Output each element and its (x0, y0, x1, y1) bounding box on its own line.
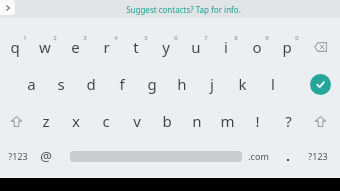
button[interactable]: b (152, 103, 182, 139)
staticText: 5 (144, 34, 148, 42)
staticText: j (210, 74, 214, 94)
button[interactable]: o (242, 29, 272, 65)
staticText: t (133, 37, 139, 57)
button[interactable]: f (107, 66, 137, 102)
button[interactable]: q (0, 29, 30, 65)
button[interactable]: Expand suggestions (0, 0, 15, 15)
staticText: q (10, 37, 20, 57)
staticText: g (147, 74, 157, 94)
staticText: e (71, 37, 80, 57)
button[interactable]: Backspace (305, 29, 335, 65)
button[interactable]: Shift (1, 103, 31, 139)
staticText: z (42, 111, 50, 131)
staticText: y (162, 37, 170, 57)
button[interactable]: s (46, 66, 76, 102)
button[interactable]: i (211, 29, 241, 65)
staticText: m (220, 111, 235, 131)
staticText: h (177, 74, 187, 94)
button[interactable]: j (197, 66, 227, 102)
staticText: v (133, 111, 141, 131)
staticText: 1 (23, 34, 27, 42)
staticText: p (282, 37, 292, 57)
staticText: ! (255, 111, 260, 131)
button[interactable]: h (167, 66, 197, 102)
button[interactable]: y (151, 29, 181, 65)
staticText: a (27, 74, 36, 94)
staticText: x (72, 111, 80, 131)
staticText: 3 (83, 34, 87, 42)
button[interactable]: .com (240, 140, 276, 172)
staticText: 8 (234, 34, 238, 42)
staticText: ?123 (308, 150, 328, 162)
button[interactable]: z (31, 103, 61, 139)
staticText: i (224, 37, 228, 57)
button[interactable]: ?123 (301, 140, 335, 172)
staticText: .com (248, 150, 269, 162)
staticText: d (86, 74, 96, 94)
button[interactable]: Suggest contacts? Tap for info. (40, 0, 326, 18)
staticText: 4 (114, 34, 118, 42)
button[interactable]: p (272, 29, 302, 65)
staticText: s (57, 74, 65, 94)
staticText: r (103, 37, 110, 57)
staticText: w (39, 37, 51, 57)
staticText: 9 (265, 34, 269, 42)
staticText: u (191, 37, 201, 57)
button[interactable]: t (121, 29, 151, 65)
staticText: l (271, 74, 275, 94)
button[interactable]: d (76, 66, 106, 102)
button[interactable]: ?123 (1, 140, 35, 172)
button[interactable]: g (137, 66, 167, 102)
staticText: Suggest contacts? Tap for info. (126, 4, 241, 15)
button[interactable]: u (181, 29, 211, 65)
button[interactable]: @ (32, 140, 60, 172)
staticText: @ (40, 147, 52, 165)
button[interactable]: n (182, 103, 212, 139)
button[interactable] (276, 140, 300, 172)
staticText: 0 (295, 34, 299, 42)
staticText: o (252, 37, 262, 57)
staticText: 2 (53, 34, 57, 42)
button[interactable]: e (60, 29, 90, 65)
staticText: b (162, 111, 172, 131)
button[interactable]: Shift (305, 103, 335, 139)
button[interactable]: Enter (305, 66, 335, 102)
button[interactable]: a (16, 66, 46, 102)
button[interactable]: ! (242, 103, 272, 139)
button[interactable]: v (122, 103, 152, 139)
button[interactable]: m (212, 103, 242, 139)
button[interactable]: x (61, 103, 91, 139)
button[interactable]: w (30, 29, 60, 65)
button[interactable]: c (91, 103, 121, 139)
staticText: f (119, 74, 125, 94)
staticText: n (192, 111, 202, 131)
button[interactable]: k (227, 66, 257, 102)
staticText: ?123 (8, 150, 28, 162)
staticText: k (238, 74, 247, 94)
staticText: ? (285, 111, 292, 131)
staticText: 7 (204, 34, 208, 42)
staticText: c (102, 111, 110, 131)
button[interactable]: r (91, 29, 121, 65)
button[interactable]: l (258, 66, 288, 102)
button[interactable]: ? (273, 103, 303, 139)
button[interactable]: Space (70, 140, 242, 172)
staticText: 6 (174, 34, 178, 42)
